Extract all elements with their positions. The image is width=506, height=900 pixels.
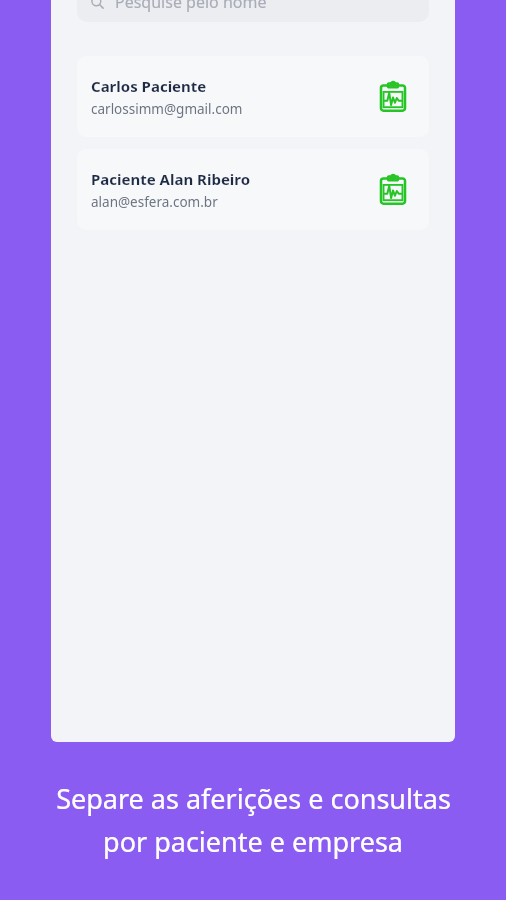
staticText: Paciente Alan Ribeiro — [91, 169, 251, 189]
button[interactable]: Ver aferições do paciente — [373, 170, 413, 210]
button[interactable]: Paciente Alan Ribeiro — [77, 149, 429, 230]
staticText: carlossimm@gmail.com — [91, 100, 243, 118]
staticText: Carlos Paciente — [91, 76, 207, 96]
staticText: por paciente e empresa — [103, 823, 403, 860]
button[interactable]: Carlos Paciente — [77, 56, 429, 137]
button[interactable]: Ver aferições do paciente — [373, 77, 413, 117]
staticText: Separe as aferições e consultas — [56, 780, 451, 817]
staticText: alan@esfera.com.br — [91, 193, 218, 211]
button[interactable]: Pesquise pelo nome — [77, 0, 429, 22]
staticText: Pesquise pelo nome — [115, 0, 267, 13]
